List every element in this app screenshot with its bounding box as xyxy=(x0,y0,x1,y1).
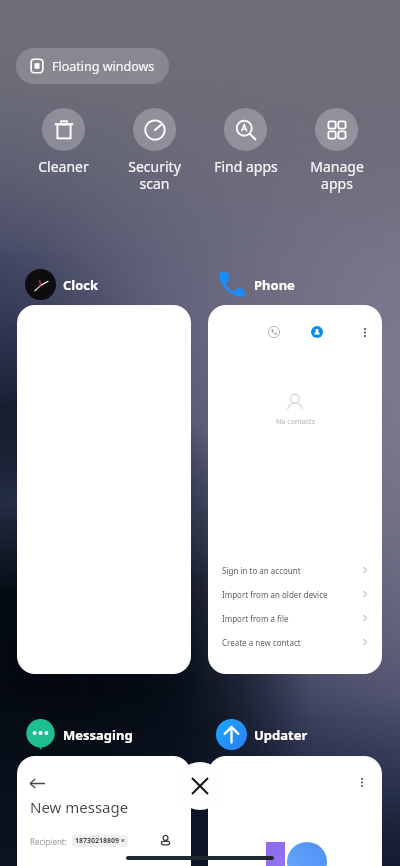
button[interactable]: Clock xyxy=(25,269,99,300)
button[interactable]: Contacts xyxy=(307,322,326,341)
staticText: Floating windows xyxy=(52,58,155,75)
button[interactable]: More options xyxy=(208,756,382,866)
button[interactable]: Floating windows xyxy=(16,48,169,84)
button[interactable]: Sign in to an account xyxy=(208,558,382,582)
button[interactable]: Cleaner xyxy=(18,108,109,176)
staticText: No contacts xyxy=(276,417,315,427)
button[interactable]: Recent calls xyxy=(208,305,382,674)
staticText: Find apps xyxy=(214,157,278,176)
button[interactable]: Import from a file xyxy=(208,606,382,630)
button[interactable]: Recent calls xyxy=(265,323,283,341)
staticText: Clock xyxy=(63,276,99,294)
button[interactable] xyxy=(17,305,191,674)
staticText: Manage apps xyxy=(310,157,364,193)
staticText: Security scan xyxy=(128,157,181,193)
button[interactable]: Import from an older device xyxy=(208,582,382,606)
staticText: Import from an older device xyxy=(222,589,328,600)
staticText: Sign in to an account xyxy=(222,565,301,576)
staticText: Cleaner xyxy=(38,157,89,176)
button[interactable]: Create a new contact xyxy=(208,630,382,654)
staticText: New message xyxy=(30,797,129,817)
button[interactable]: Find apps xyxy=(200,108,291,176)
staticText: Import from a file xyxy=(222,613,289,624)
staticText: Create a new contact xyxy=(222,637,301,648)
staticText: Recipient: xyxy=(30,836,67,847)
button[interactable]: Messaging xyxy=(25,719,133,750)
button[interactable]: Updater xyxy=(216,719,308,750)
button[interactable]: More options xyxy=(353,773,371,791)
staticText: Updater xyxy=(254,726,308,744)
button[interactable]: New message xyxy=(17,756,191,866)
staticText: Phone xyxy=(254,276,295,294)
staticText: Messaging xyxy=(63,726,133,744)
staticText: 18730218809 × xyxy=(75,836,125,846)
button[interactable]: More options xyxy=(356,323,374,341)
button[interactable]: Phone xyxy=(216,269,295,300)
button[interactable]: Close all xyxy=(176,762,224,810)
button[interactable]: Manage apps xyxy=(291,108,382,193)
button[interactable]: Security scan xyxy=(109,108,200,193)
